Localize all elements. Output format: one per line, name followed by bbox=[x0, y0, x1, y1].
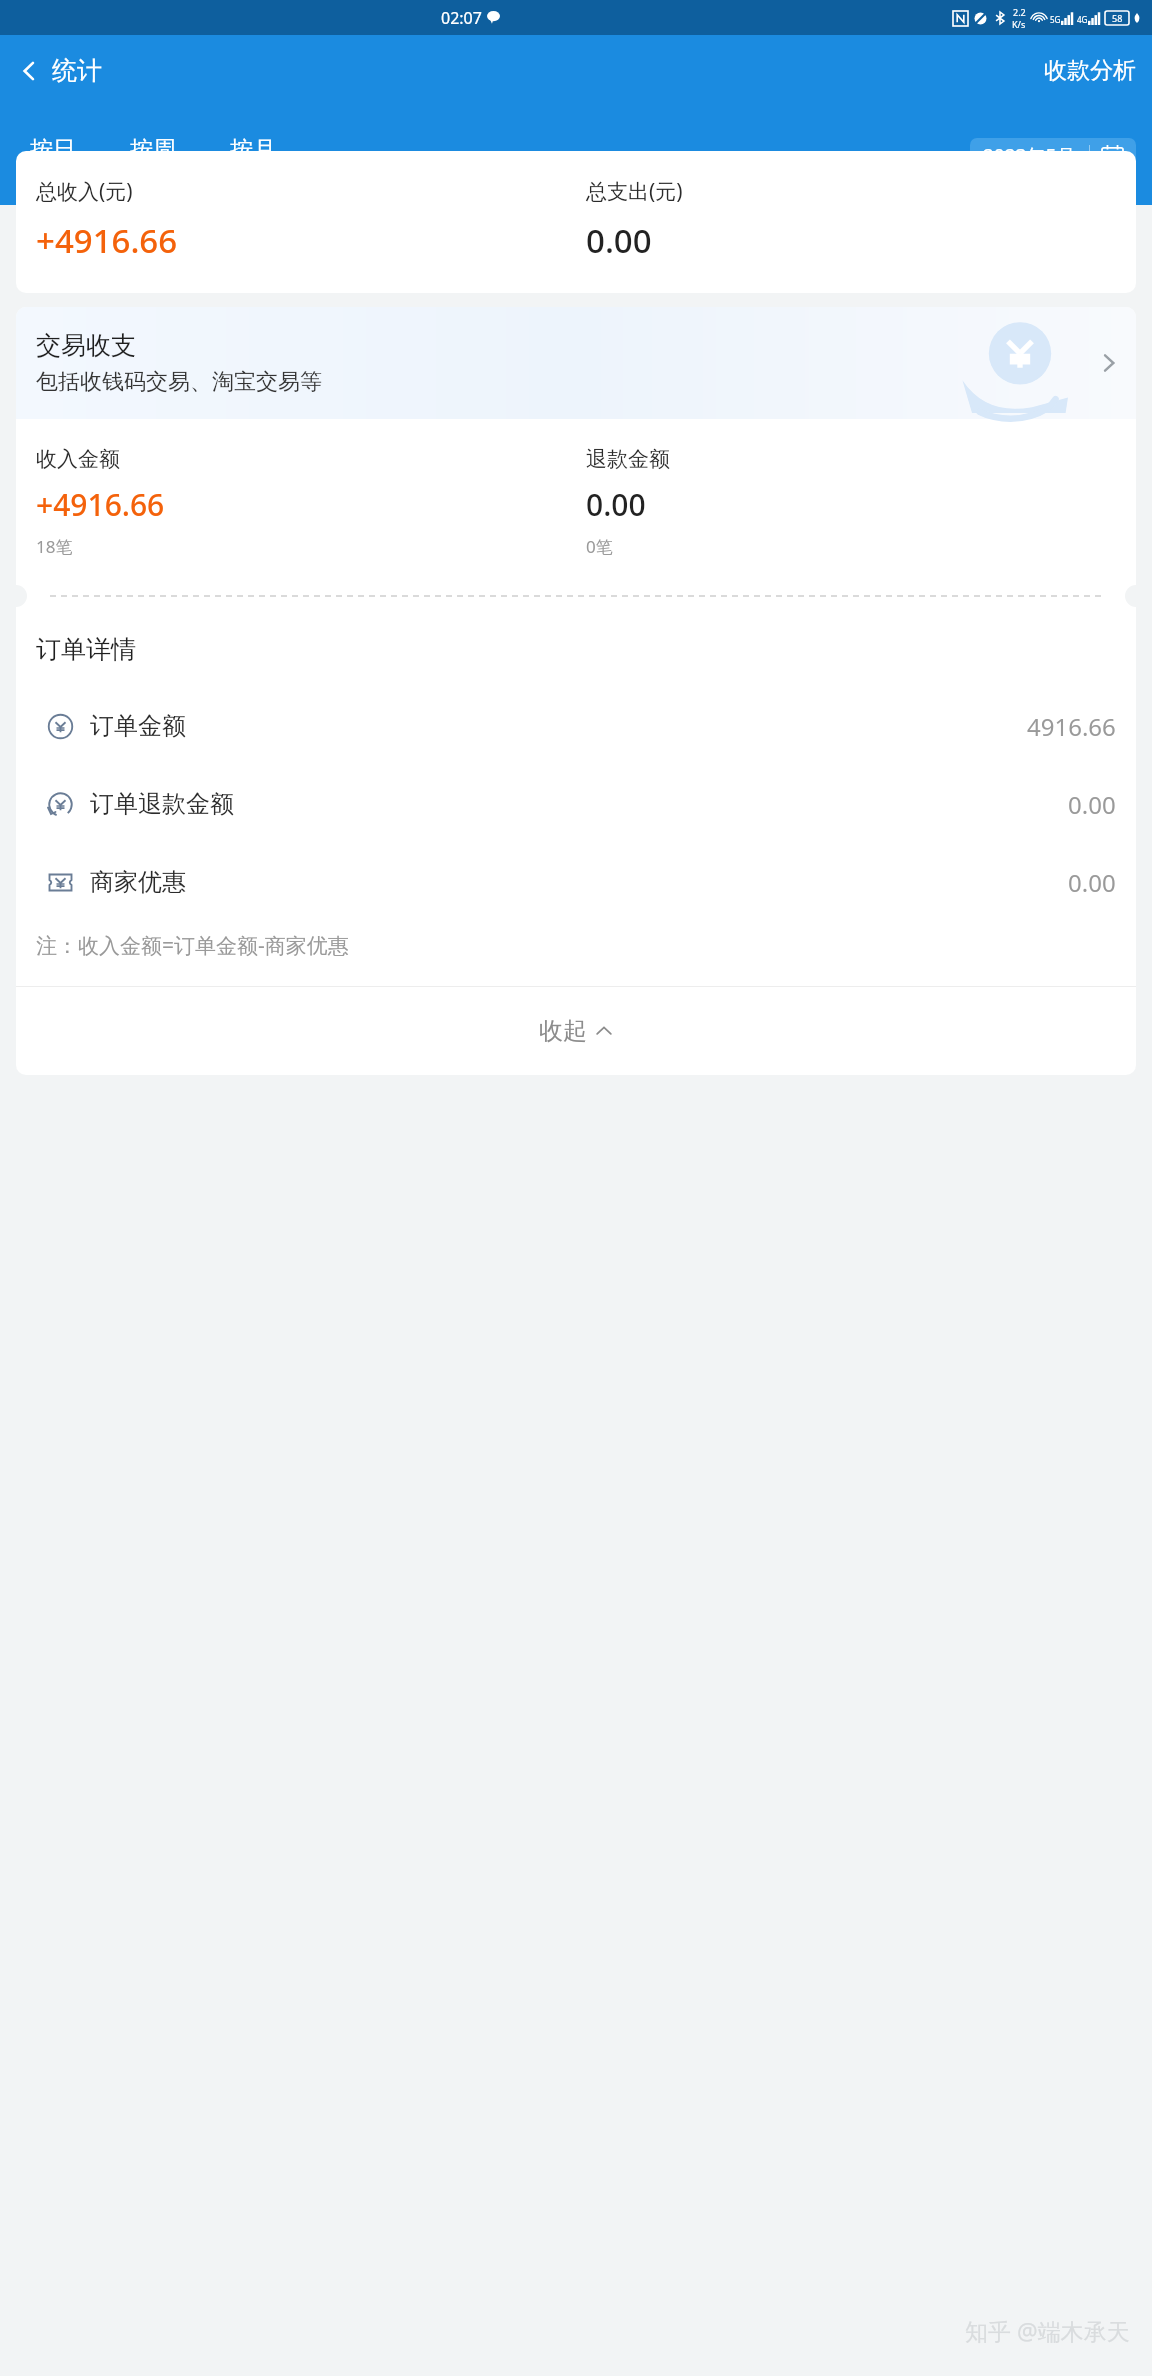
button[interactable]: 商家优惠 bbox=[16, 843, 1136, 921]
staticText: 按月 bbox=[230, 135, 276, 164]
button[interactable]: 总收入(元) bbox=[16, 151, 1136, 293]
button[interactable]: 订单金额 bbox=[16, 687, 1136, 765]
staticText: 注：收入金额=订单金额-商家优惠 bbox=[36, 931, 349, 960]
staticText: 总收入(元) bbox=[36, 177, 133, 206]
button[interactable]: 收起 bbox=[16, 987, 1136, 1075]
staticText: 58 bbox=[1112, 12, 1123, 24]
staticText: 包括收钱码交易、淘宝交易等 bbox=[36, 368, 322, 396]
staticText: 订单金额 bbox=[90, 711, 186, 741]
staticText: 2.2 bbox=[1013, 6, 1026, 18]
staticText: +4916.66 bbox=[36, 218, 178, 263]
button[interactable]: 按月 bbox=[214, 131, 292, 180]
staticText: 统计 bbox=[52, 55, 102, 86]
staticText: 商家优惠 bbox=[90, 867, 186, 897]
other: More bbox=[1098, 352, 1120, 374]
button[interactable]: 收款分析 bbox=[1028, 48, 1152, 93]
staticText: K/s bbox=[1012, 18, 1026, 30]
staticText: 总支出(元) bbox=[586, 177, 683, 206]
staticText: 退款金额 bbox=[586, 446, 670, 472]
staticText: 知乎 @端木承天 bbox=[965, 2315, 1130, 2346]
staticText: 按周 bbox=[130, 135, 176, 164]
other: Back bbox=[18, 60, 40, 82]
staticText: 按日 bbox=[30, 135, 76, 164]
staticText: 4G bbox=[1077, 14, 1088, 25]
button[interactable]: 订单退款金额 bbox=[16, 765, 1136, 843]
staticText: 4916.66 bbox=[1027, 710, 1116, 743]
staticText: 订单退款金额 bbox=[90, 789, 234, 819]
staticText: 订单详情 bbox=[36, 634, 136, 665]
other: Select date bbox=[1102, 145, 1123, 166]
staticText: 0.00 bbox=[1068, 866, 1116, 899]
staticText: 收起 bbox=[539, 1016, 587, 1046]
staticText: +4916.66 bbox=[36, 484, 165, 525]
staticText: 0.00 bbox=[586, 484, 646, 525]
staticText: 交易收支 bbox=[36, 330, 136, 361]
button[interactable]: Back bbox=[0, 49, 114, 92]
staticText: 收款分析 bbox=[1044, 56, 1136, 85]
button[interactable]: 2023年5月 bbox=[970, 138, 1136, 173]
button[interactable]: 交易收支 bbox=[16, 307, 1136, 419]
staticText: 2023年5月 bbox=[983, 143, 1076, 169]
button[interactable]: 按日 bbox=[14, 131, 92, 180]
button[interactable]: 按周 bbox=[114, 131, 192, 180]
staticText: 0.00 bbox=[586, 218, 652, 263]
staticText: 18笔 bbox=[36, 535, 73, 558]
staticText: 收入金额 bbox=[36, 446, 120, 472]
staticText: 0笔 bbox=[586, 535, 613, 558]
staticText: 0.00 bbox=[1068, 788, 1116, 821]
staticText: 02:07 bbox=[441, 7, 482, 29]
staticText: 5G bbox=[1050, 14, 1061, 25]
